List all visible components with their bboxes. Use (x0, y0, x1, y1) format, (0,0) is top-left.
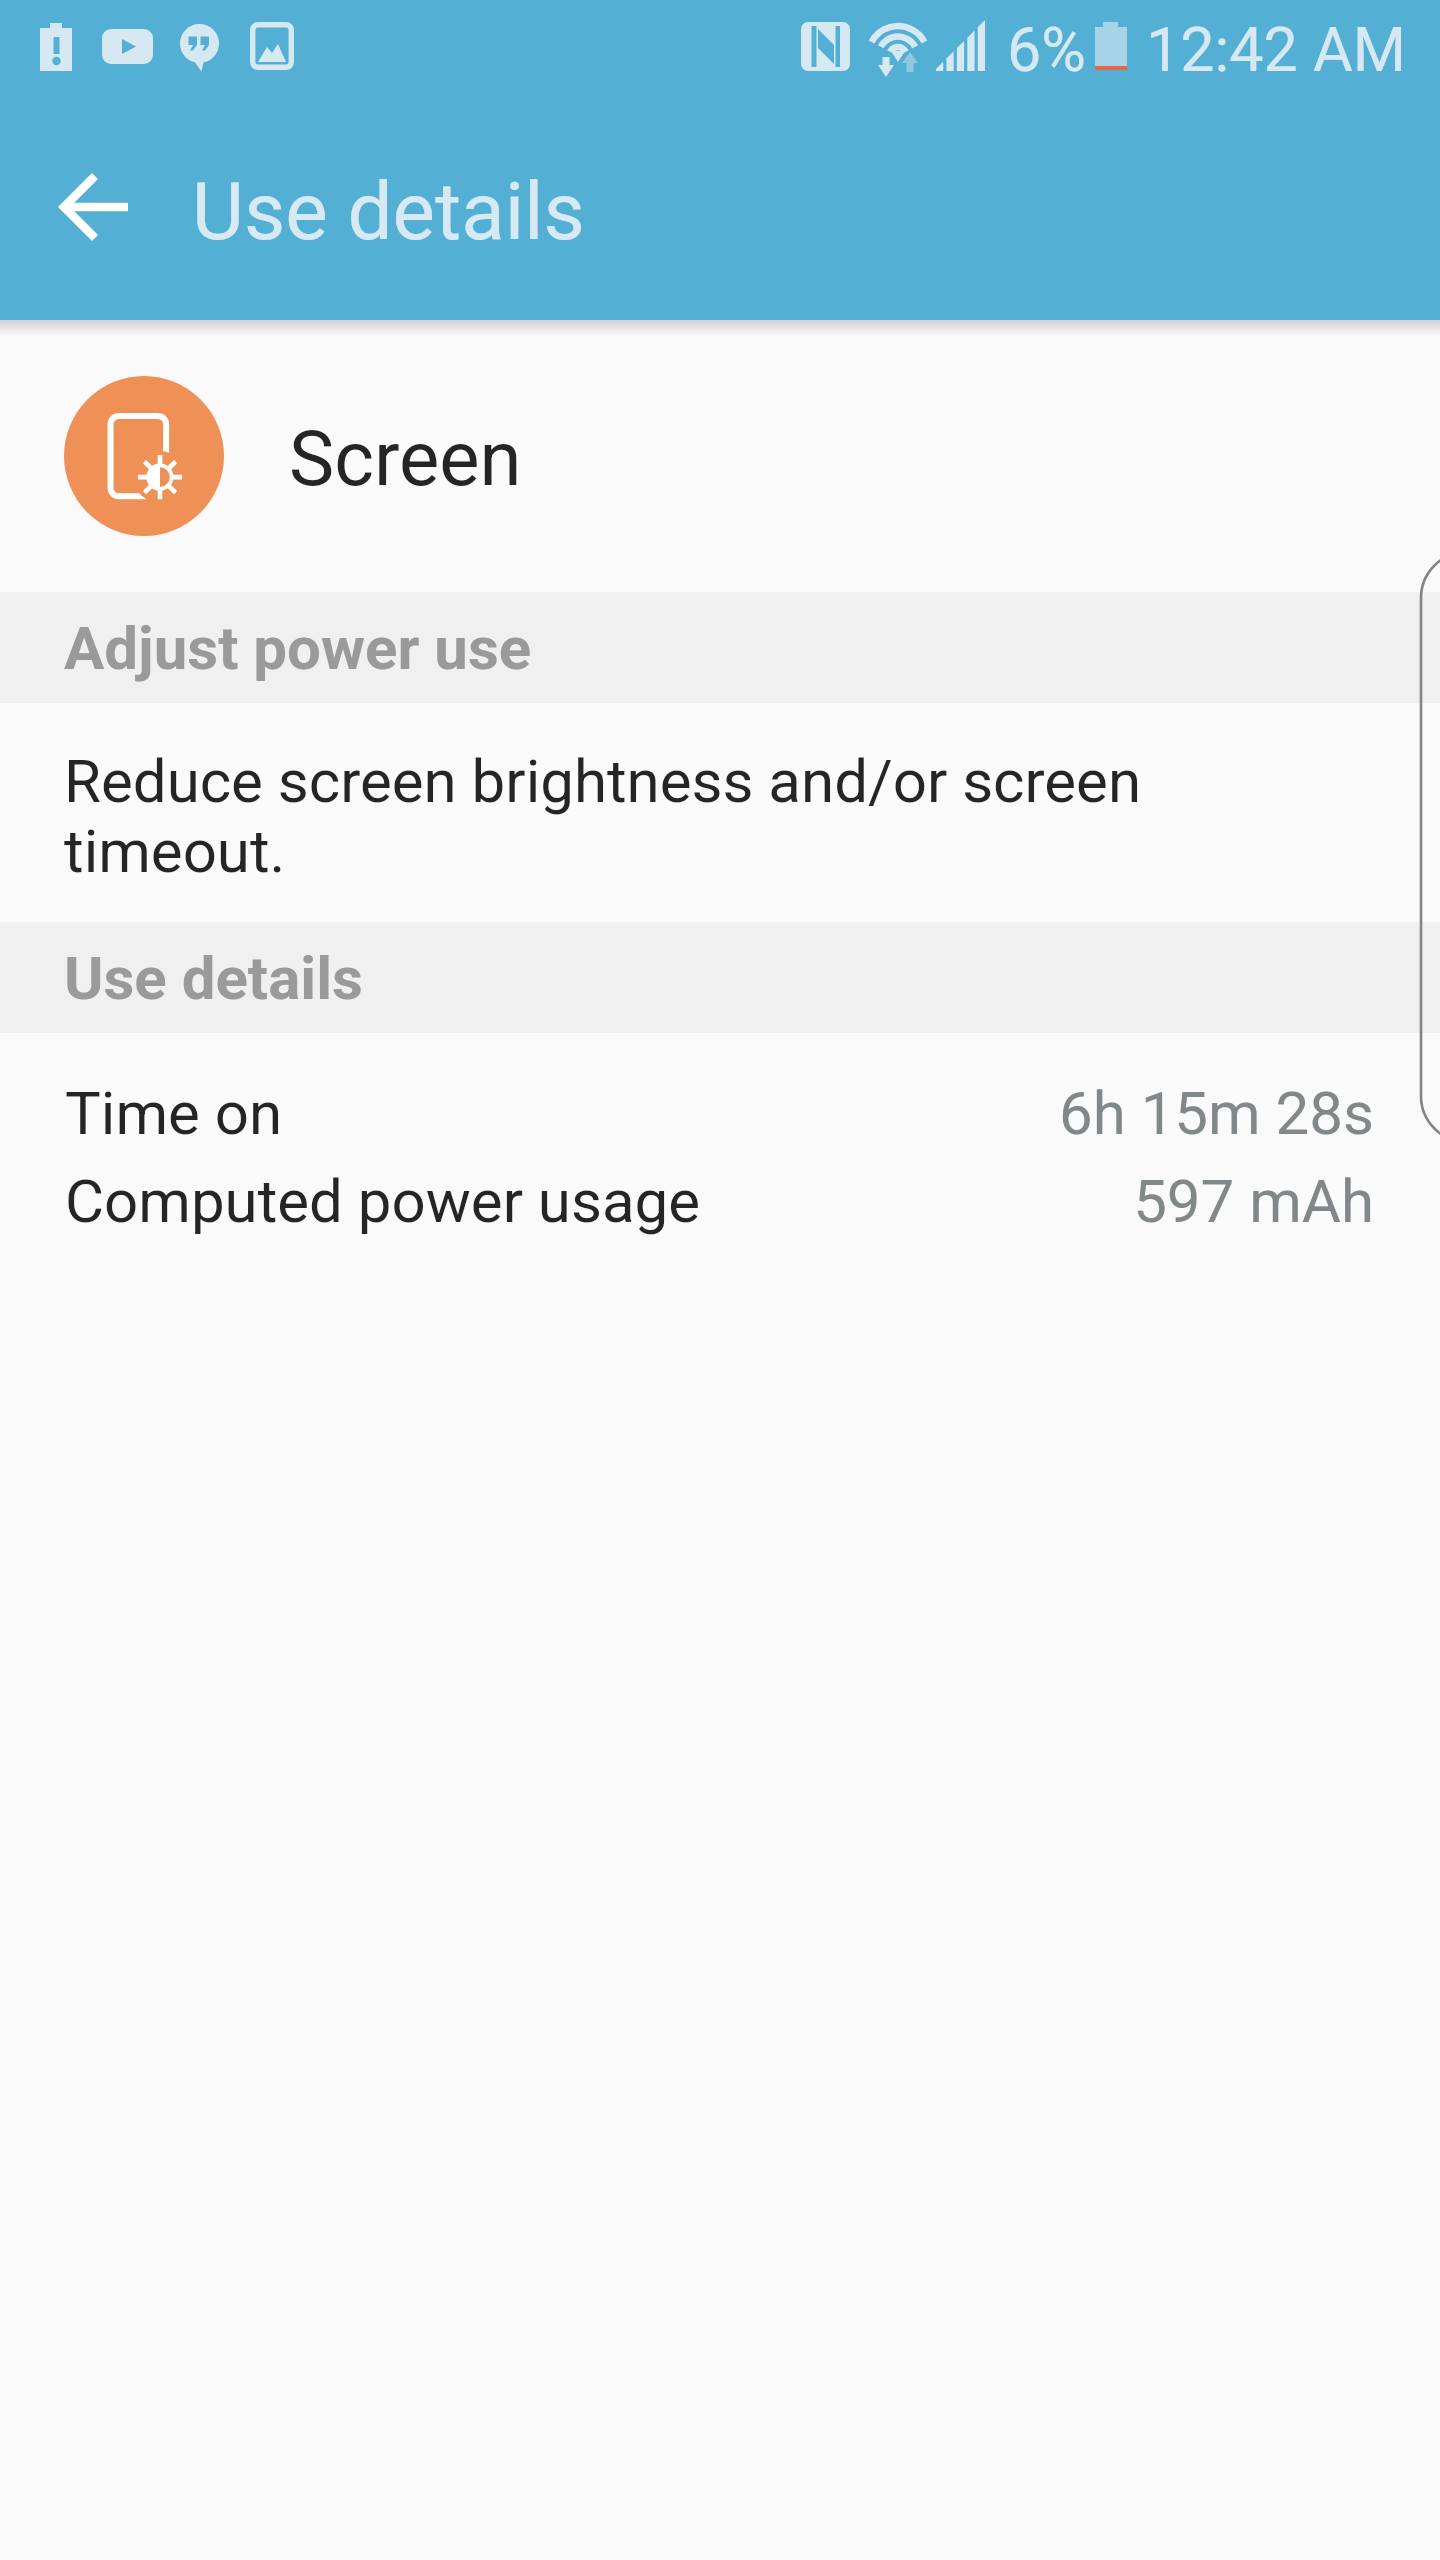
staticText: Screen (289, 414, 522, 503)
button[interactable]: Time on (0, 1069, 1440, 1157)
button[interactable]: Computed power usage (0, 1157, 1440, 1245)
staticText: Use details (64, 943, 363, 1013)
staticText: Adjust power use (64, 613, 532, 683)
staticText: Use details (192, 165, 585, 259)
staticText: 597 mAh (1133, 1166, 1374, 1236)
staticText: Reduce screen brightness and/or screen t… (64, 746, 1200, 887)
staticText: 6h 15m 28s (1059, 1078, 1374, 1148)
staticText: Computed power usage (65, 1166, 701, 1236)
staticText: 6% (1007, 14, 1086, 85)
staticText: Time on (65, 1078, 283, 1148)
button[interactable]: Navigate up (16, 127, 176, 287)
staticText: 12:42 AM (1146, 14, 1407, 85)
